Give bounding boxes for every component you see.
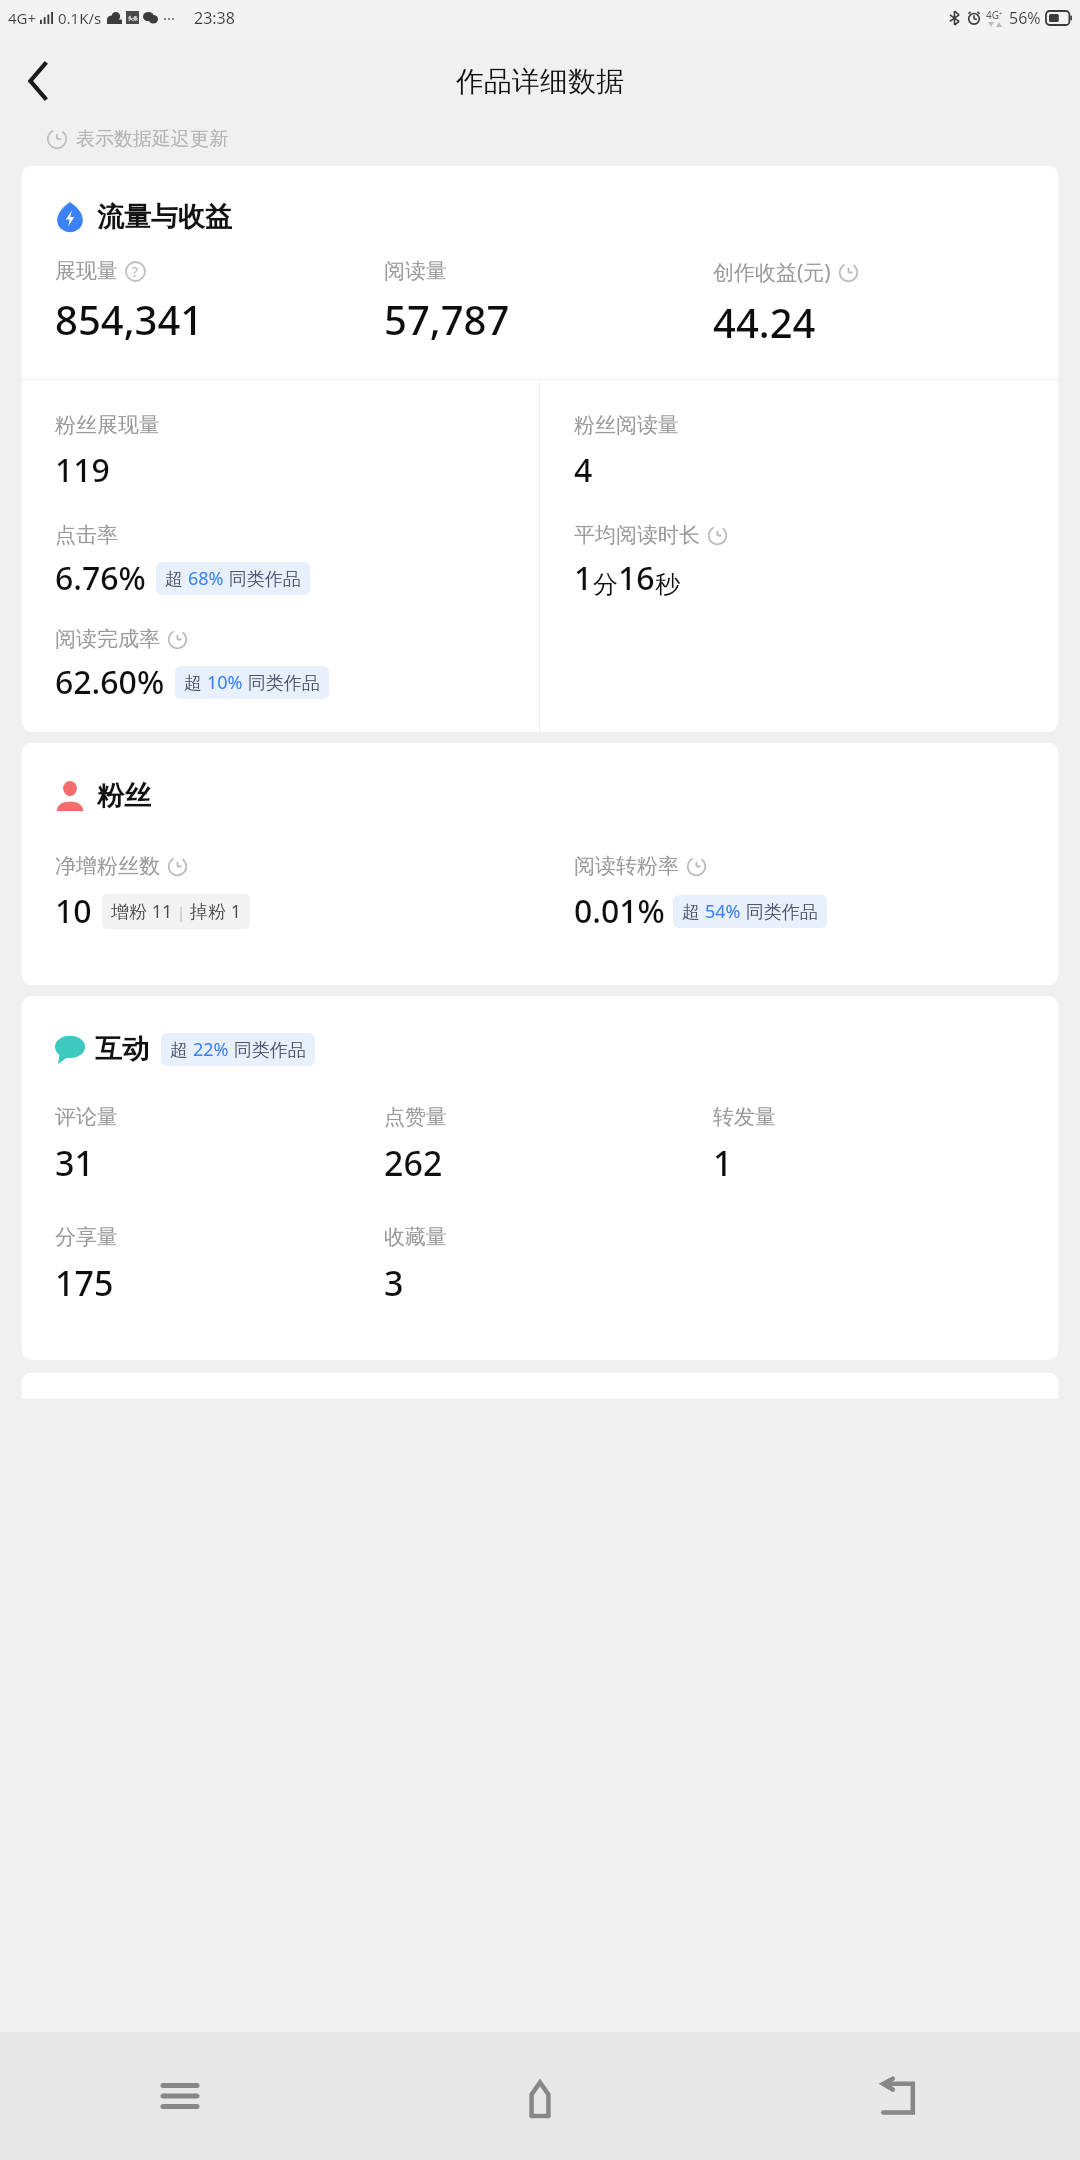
button[interactable]: Home [360, 2032, 720, 2160]
staticText: 4G+ [8, 8, 37, 28]
staticText: 16 [618, 556, 655, 600]
staticText: 超 [184, 670, 207, 695]
staticText: 转发量 [713, 1104, 776, 1130]
staticText: 54% [705, 899, 741, 924]
staticText: 阅读转粉率 [574, 853, 679, 879]
staticText: 同类作品 [741, 899, 818, 924]
button[interactable]: 超 [184, 670, 320, 695]
staticText: 44.24 [713, 295, 816, 349]
staticText: 23:38 [194, 7, 235, 29]
staticText: 阅读量 [384, 258, 447, 284]
staticText: 同类作品 [243, 670, 320, 695]
staticText: 创作收益(元) [713, 258, 831, 287]
staticText: 56% [1009, 7, 1041, 29]
button[interactable]: 增粉 11 [111, 899, 241, 924]
staticText: 262 [384, 1140, 443, 1186]
staticText: 超 [170, 1037, 193, 1062]
staticText: 同类作品 [229, 1037, 306, 1062]
button[interactable]: Back [10, 53, 66, 109]
staticText: 4G⁺ [986, 8, 1003, 22]
button[interactable]: 超 [170, 1037, 306, 1062]
staticText: 互动 [95, 1032, 149, 1066]
staticText: 掉粉 1 [190, 899, 241, 924]
staticText: 854,341 [55, 292, 204, 346]
staticText: 62.60% [55, 660, 165, 704]
staticText: 点击率 [55, 522, 118, 548]
button[interactable]: Recent apps [0, 2032, 360, 2160]
staticText: 0.1K/s [58, 8, 102, 28]
staticText: 分 [593, 569, 618, 600]
staticText: 22% [193, 1037, 229, 1062]
staticText: 175 [55, 1260, 114, 1306]
staticText: 1 [713, 1140, 733, 1186]
staticText: ··· [163, 8, 176, 28]
staticText: ? [132, 262, 139, 281]
staticText: 粉丝展现量 [55, 412, 160, 438]
staticText: 增粉 11 [111, 899, 173, 924]
staticText: 超 [165, 566, 188, 591]
staticText: 57,787 [384, 292, 510, 346]
staticText: 10 [55, 889, 92, 933]
staticText: 超 [682, 899, 705, 924]
staticText: 10% [207, 670, 243, 695]
staticText: | [173, 902, 190, 922]
staticText: 头条 [128, 15, 138, 21]
staticText: 分享量 [55, 1224, 118, 1250]
staticText: 粉丝 [97, 779, 151, 813]
button[interactable]: 超 [165, 566, 301, 591]
staticText: 阅读完成率 [55, 626, 160, 652]
staticText: 同类作品 [224, 566, 301, 591]
staticText: 作品详细数据 [456, 64, 624, 99]
staticText: 3 [384, 1260, 404, 1306]
staticText: 平均阅读时长 [574, 522, 700, 548]
staticText: 6.76% [55, 556, 146, 600]
button[interactable]: Back [720, 2032, 1080, 2160]
button[interactable]: 超 [682, 899, 818, 924]
staticText: 粉丝阅读量 [574, 412, 679, 438]
staticText: 展现量 [55, 258, 118, 284]
staticText: 1 [574, 556, 593, 600]
staticText: 流量与收益 [97, 200, 232, 234]
staticText: 评论量 [55, 1104, 118, 1130]
staticText: 4 [574, 448, 593, 492]
staticText: 收藏量 [384, 1224, 447, 1250]
staticText: 净增粉丝数 [55, 853, 160, 879]
staticText: 点赞量 [384, 1104, 447, 1130]
staticText: 秒 [655, 569, 680, 600]
staticText: 68% [188, 566, 224, 591]
staticText: 表示数据延迟更新 [76, 127, 228, 151]
staticText: 119 [55, 448, 110, 492]
staticText: 31 [55, 1140, 94, 1186]
staticText: 0.01% [574, 889, 665, 933]
